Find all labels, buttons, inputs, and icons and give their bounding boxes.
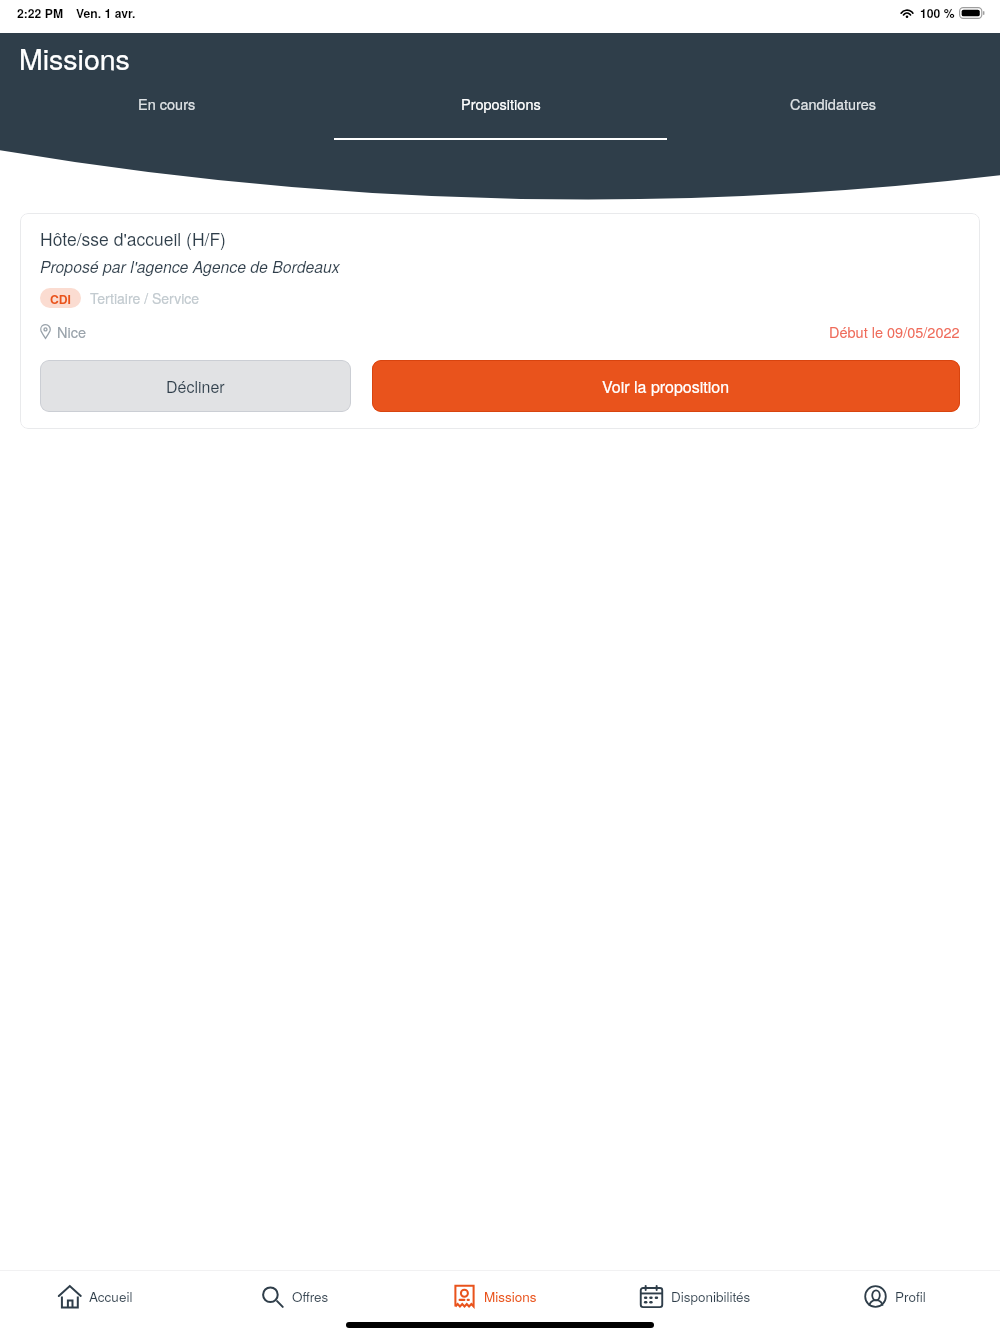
staticText: Hôte/sse d'accueil (H/F)	[40, 226, 226, 251]
staticText: Proposé par l'agence Agence de Bordeaux	[40, 255, 340, 277]
staticText: Profil	[895, 1287, 926, 1306]
button[interactable]: Accueil	[0, 1271, 200, 1322]
staticText: Voir la proposition	[602, 375, 730, 398]
button[interactable]: Hôte/sse d'accueil (H/F)	[20, 213, 980, 429]
staticText: Disponibilités	[671, 1287, 751, 1306]
staticText: Missions	[19, 37, 130, 78]
staticText: 100 %	[920, 4, 955, 21]
button[interactable]: Voir la proposition	[372, 360, 960, 412]
staticText: Tertiaire / Service	[90, 288, 200, 308]
button[interactable]: Candidatures	[667, 93, 1000, 140]
staticText: Ven. 1 avr.	[76, 4, 136, 21]
button[interactable]: Propositions	[334, 93, 667, 140]
staticText: Décliner	[166, 375, 225, 398]
button[interactable]: Décliner	[40, 360, 351, 412]
staticText: Accueil	[89, 1287, 133, 1306]
staticText: Offres	[292, 1287, 329, 1306]
staticText: Nice	[57, 321, 86, 342]
staticText: 2:22 PM	[17, 4, 64, 21]
staticText: En cours	[138, 93, 196, 114]
button[interactable]: Profil	[800, 1271, 1000, 1322]
button[interactable]: Missions	[400, 1271, 600, 1322]
staticText: Missions	[484, 1287, 537, 1306]
button[interactable]: Disponibilités	[600, 1271, 800, 1322]
button[interactable]: En cours	[0, 93, 334, 140]
staticText: Début le 09/05/2022	[829, 321, 960, 342]
staticText: Propositions	[461, 93, 541, 114]
staticText: Candidatures	[790, 93, 877, 114]
staticText: CDI	[50, 290, 71, 307]
button[interactable]: Offres	[200, 1271, 400, 1322]
